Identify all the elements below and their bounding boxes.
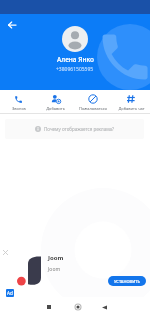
button[interactable]: Back xyxy=(4,17,20,33)
staticText: Joom xyxy=(48,254,64,262)
button[interactable]: Добавить xyxy=(37,92,74,111)
button[interactable]: Звонок xyxy=(0,93,37,111)
button[interactable]: Close ad xyxy=(0,247,11,258)
staticText: Ad xyxy=(7,290,13,296)
staticText: +380961505595 xyxy=(56,66,94,73)
staticText: Добавить xyxy=(46,106,65,111)
button[interactable]: Recents xyxy=(42,300,56,314)
button[interactable]: Home xyxy=(71,300,85,314)
staticText: Звонок xyxy=(12,106,26,111)
staticText: Алена Янко xyxy=(57,55,94,64)
button[interactable]: Почему отображается реклама? xyxy=(5,119,144,139)
button[interactable]: Back xyxy=(97,300,111,314)
button[interactable]: Пожаловаться xyxy=(74,92,112,111)
button[interactable]: Добавить чат xyxy=(112,92,150,111)
staticText: Почему отображается реклама? xyxy=(44,126,115,132)
staticText: Пожаловаться xyxy=(79,106,107,111)
staticText: Добавить чат xyxy=(118,106,145,111)
staticText: Joom xyxy=(48,266,61,273)
staticText: УСТАНОВИТЬ xyxy=(114,279,140,284)
button[interactable]: УСТАНОВИТЬ xyxy=(108,276,146,286)
